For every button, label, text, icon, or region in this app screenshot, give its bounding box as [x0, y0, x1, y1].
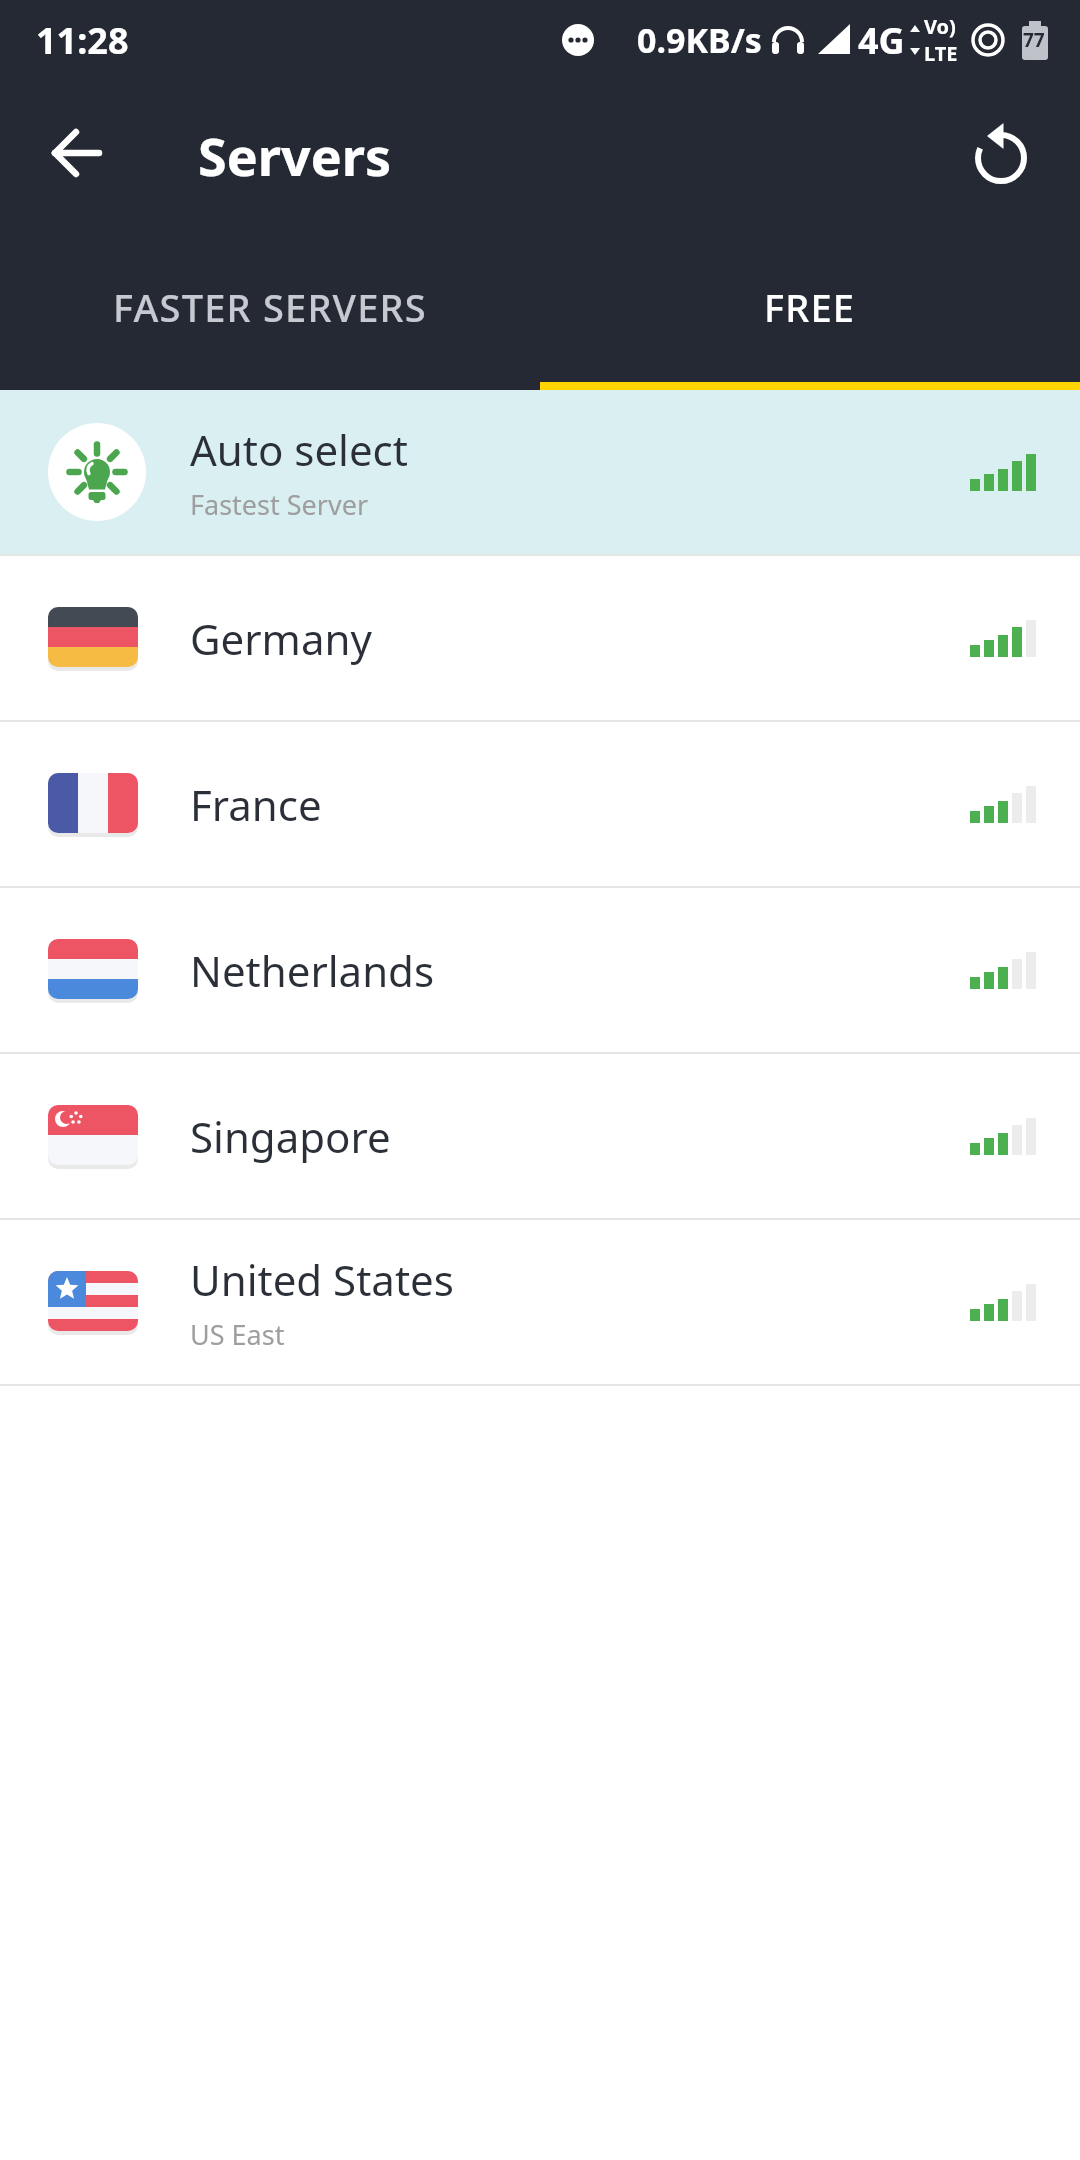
staticText: Germany	[190, 610, 372, 667]
button[interactable]: Germany	[0, 556, 1080, 720]
button[interactable]: Netherlands	[0, 888, 1080, 1052]
staticText: Fastest Server	[190, 486, 369, 523]
button[interactable]: FREE	[540, 230, 1080, 390]
staticText: FREE	[764, 281, 856, 333]
staticText: 0.9KB/s	[637, 17, 762, 63]
button[interactable]	[44, 122, 110, 188]
button[interactable]: FASTER SERVERS	[0, 230, 540, 390]
staticText: 11:28	[36, 16, 129, 65]
staticText: 77	[1023, 27, 1045, 53]
staticText: France	[190, 776, 322, 833]
staticText: 4G	[858, 16, 905, 65]
staticText: US East	[190, 1316, 285, 1353]
staticText: FASTER SERVERS	[113, 281, 427, 333]
button[interactable]: Auto select	[0, 390, 1080, 554]
staticText: Vo)	[924, 13, 956, 40]
button[interactable]: Singapore	[0, 1054, 1080, 1218]
button[interactable]	[968, 122, 1034, 188]
button[interactable]: France	[0, 722, 1080, 886]
staticText: Netherlands	[190, 942, 435, 999]
staticText: Auto select	[190, 421, 408, 478]
button[interactable]: United States	[0, 1220, 1080, 1384]
staticText: United States	[190, 1251, 454, 1308]
staticText: Servers	[198, 120, 392, 191]
staticText: Singapore	[190, 1108, 391, 1165]
staticText: LTE	[924, 40, 958, 67]
